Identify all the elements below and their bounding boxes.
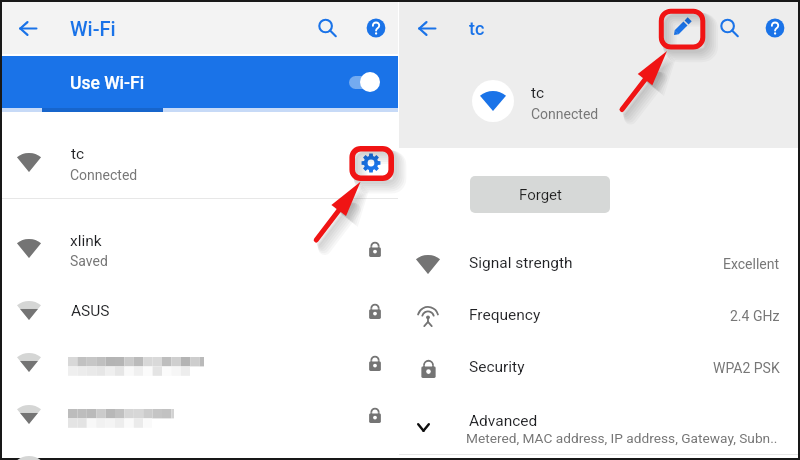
- button[interactable]: Help: [352, 4, 400, 52]
- staticText: tc: [71, 145, 85, 163]
- staticText: Excellent: [723, 256, 780, 272]
- staticText: tc: [531, 84, 545, 102]
- button[interactable]: [2, 337, 398, 389]
- button[interactable]: Forget: [470, 176, 610, 213]
- staticText: ASUS: [71, 302, 110, 320]
- button[interactable]: [399, 394, 798, 454]
- staticText: Forget: [519, 186, 562, 204]
- staticText: xlink: [70, 232, 102, 250]
- staticText: Signal strength: [469, 254, 573, 272]
- staticText: tc: [469, 18, 485, 39]
- button[interactable]: [2, 112, 398, 199]
- button[interactable]: Search: [705, 4, 753, 52]
- button[interactable]: Back: [4, 4, 52, 52]
- button[interactable]: Search: [303, 4, 351, 52]
- staticText: Security: [469, 358, 525, 376]
- button[interactable]: [399, 240, 798, 292]
- staticText: Use Wi-Fi: [70, 73, 145, 94]
- staticText: Metered, MAC address, IP address, Gatewa…: [466, 430, 778, 446]
- staticText: Wi-Fi: [70, 17, 116, 40]
- staticText: WPA2 PSK: [713, 360, 780, 376]
- button[interactable]: Edit: [657, 4, 705, 52]
- staticText: Frequency: [469, 306, 541, 324]
- button[interactable]: [2, 199, 398, 280]
- staticText: 2.4 GHz: [730, 308, 780, 324]
- staticText: Connected: [70, 167, 138, 183]
- button[interactable]: Help: [751, 4, 799, 52]
- button[interactable]: [2, 389, 398, 441]
- button[interactable]: [399, 292, 798, 344]
- button[interactable]: [399, 344, 798, 396]
- button[interactable]: Back: [403, 4, 451, 52]
- button[interactable]: [2, 285, 398, 337]
- button[interactable]: [2, 56, 398, 108]
- staticText: Saved: [70, 253, 108, 269]
- staticText: Connected: [531, 106, 599, 122]
- staticText: Advanced: [469, 412, 538, 430]
- button[interactable]: Network settings: [350, 142, 392, 184]
